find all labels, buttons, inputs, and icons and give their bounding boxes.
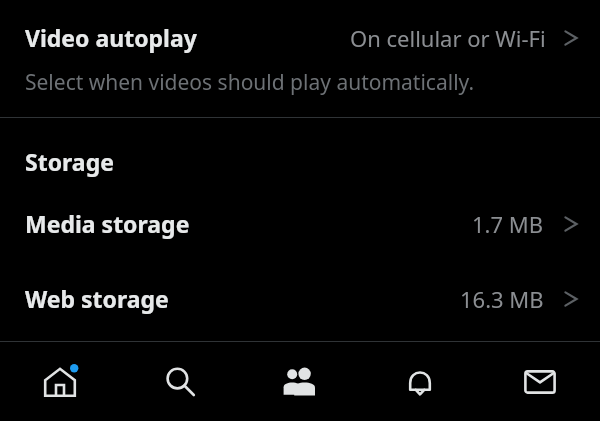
staticText: On cellular or Wi-Fi [350,23,546,53]
button[interactable]: Communities [240,342,360,421]
staticText: Video autoplay [25,22,197,53]
staticText: Media storage [25,208,190,239]
button[interactable]: Web storage [0,261,600,336]
button[interactable]: Home [0,342,120,421]
button[interactable]: Messages [480,342,600,421]
staticText: Select when videos should play automatic… [25,68,475,97]
button[interactable]: Notifications [360,342,480,421]
staticText: 1.7 MB [472,209,544,239]
button[interactable]: Video autoplay [0,0,600,107]
staticText: Web storage [25,283,169,314]
button[interactable]: Media storage [0,187,600,261]
button[interactable]: Search [120,342,240,421]
staticText: 16.3 MB [460,284,544,314]
staticText: Storage [25,146,114,177]
